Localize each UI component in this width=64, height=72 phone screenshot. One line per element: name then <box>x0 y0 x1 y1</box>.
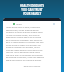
staticText: exercitation ullamco laboris nisi ut ali… <box>6 36 58 38</box>
staticText: eaque ipsa quae ab illo inventore verita… <box>6 59 58 61</box>
staticText: cillum dolore eu fugiat nulla pariatur. … <box>6 44 58 46</box>
staticText: dolor in reprehenderit in voluptate veli… <box>6 41 58 43</box>
staticText: culpa qui officia deserunt mollit anim i… <box>6 49 58 51</box>
staticText: occaecat cupidatat non proident, sunt in <box>6 46 58 48</box>
staticText: adipiscing elit, sed do eiusmod tempor <box>6 29 58 31</box>
staticText: doloremque laudantium, totam rem aperiam <box>6 56 58 58</box>
staticText: ex ea commodo consequat. Duis aute irure <box>6 39 58 41</box>
staticText: Ut enim ad minim veniam, quis nostrud <box>6 34 58 36</box>
staticText: laborum. Sed ut perspiciatis unde omnis <box>6 51 58 53</box>
staticText: Verified <box>16 23 22 25</box>
staticText: iste natus error sit voluptatem accusant… <box>6 54 58 56</box>
staticText: READ FULL ARTICLE <box>6 65 58 67</box>
staticText: incididunt ut labore et dolore magna ali… <box>6 31 58 33</box>
staticText: Lorem ipsum dolor sit amet, consectetur <box>6 26 58 28</box>
staticText: HEALTH INSIGHTS YOU CAN TRUST YOUR FAMIL… <box>20 4 44 16</box>
